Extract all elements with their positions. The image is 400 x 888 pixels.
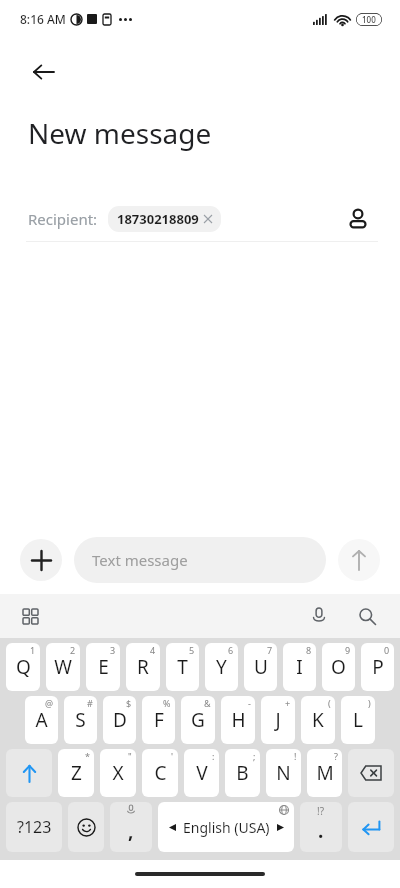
staticText: ) [368,697,371,709]
button[interactable]: Z [58,749,94,797]
button[interactable]: Enter [348,802,394,852]
staticText: 3 [110,644,116,656]
staticText: D [113,707,127,733]
staticText: I [296,654,303,680]
button[interactable]: Text message [74,537,326,583]
staticText: P [372,654,384,680]
button[interactable]: Keyboard menu [14,600,46,632]
button[interactable]: Add attachment [20,539,62,581]
staticText: 1 [30,644,36,656]
button[interactable]: Q [6,643,40,691]
button[interactable]: F [142,696,175,744]
button[interactable]: P [361,643,394,691]
staticText: 6 [228,644,234,656]
staticText: R [137,654,149,680]
staticText: 0 [384,644,390,656]
button[interactable]: D [103,696,136,744]
button[interactable]: C [142,749,178,797]
staticText: : [212,750,215,762]
button[interactable]: J [261,696,295,744]
staticText: , [128,818,134,844]
button[interactable]: U [244,643,277,691]
button[interactable]: T [166,643,199,691]
staticText: O [331,654,346,680]
button[interactable]: L [341,696,375,744]
staticText: Text message [92,550,188,570]
staticText: B [236,760,249,786]
button[interactable]: Shift [6,749,52,797]
button[interactable]: Emoji [68,802,104,852]
staticText: ?123 [17,816,52,838]
staticText: H [231,707,246,733]
staticText: ; [253,750,256,762]
staticText: New message [28,114,212,152]
staticText: + [285,697,291,709]
button[interactable]: English (USA) [158,802,294,852]
staticText: & [204,697,211,709]
staticText: 18730218809 [117,210,199,228]
button[interactable]: Backspace [348,749,394,797]
staticText: - [248,697,251,709]
staticText: " [128,750,132,762]
staticText: C [154,760,167,786]
staticText: Q [16,654,31,680]
button[interactable]: X [100,749,136,797]
button[interactable]: Voice input [302,599,336,633]
staticText: English (USA) [183,818,270,837]
button[interactable]: H [221,696,255,744]
staticText: * [85,750,90,762]
button[interactable]: I [283,643,316,691]
button[interactable]: Back [24,52,64,92]
button[interactable]: B [225,749,260,797]
staticText: 8:16 AM [20,11,66,27]
staticText: . [318,818,324,844]
button[interactable]: A [25,696,58,744]
button[interactable]: Search [350,599,384,633]
button[interactable]: ?123 [6,802,62,852]
staticText: A [35,707,48,733]
button[interactable]: N [266,749,301,797]
staticText: ( [328,697,331,709]
staticText: Recipient: [28,209,98,229]
button[interactable]: Y [205,643,238,691]
button[interactable]: W [46,643,80,691]
staticText: U [254,654,268,680]
staticText: K [312,707,324,733]
staticText: X [112,760,124,786]
staticText: ? [334,750,338,762]
staticText: $ [126,697,132,709]
button[interactable]: O [322,643,355,691]
staticText: 7 [267,644,273,656]
button[interactable]: R [126,643,160,691]
staticText: % [163,697,171,709]
button[interactable]: G [181,696,215,744]
staticText: T [177,654,188,680]
staticText: 2 [70,644,76,656]
staticText: @ [45,697,54,709]
button[interactable]: 18730218809 [108,206,221,232]
staticText: E [98,654,109,680]
staticText: !? [317,804,325,818]
button[interactable]: Contacts [338,199,378,239]
button[interactable]: K [301,696,335,744]
staticText: F [154,707,164,733]
button[interactable]: E [86,643,120,691]
staticText: # [87,697,93,709]
staticText: 4 [150,644,156,656]
staticText: W [54,654,72,680]
staticText: L [353,707,363,733]
button[interactable]: V [184,749,219,797]
staticText: V [196,760,208,786]
button[interactable]: , [110,802,152,852]
staticText: S [75,707,86,733]
button[interactable]: Send [338,539,380,581]
staticText: M [316,760,334,786]
staticText: 5 [189,644,195,656]
staticText: ! [294,750,297,762]
staticText: ' [171,750,174,762]
button[interactable]: . [300,802,342,852]
button[interactable]: M [307,749,342,797]
button[interactable]: S [64,696,97,744]
staticText: G [191,707,205,733]
staticText: 8 [306,644,312,656]
